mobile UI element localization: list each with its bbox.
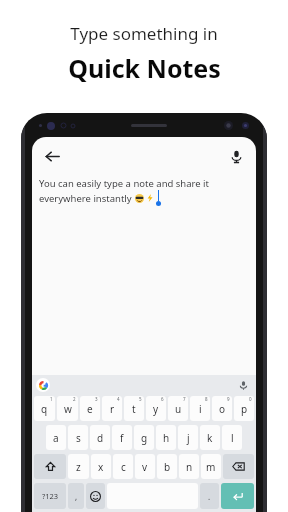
staticText: c bbox=[121, 460, 126, 474]
staticText: l bbox=[231, 431, 234, 445]
staticText: r bbox=[110, 402, 115, 416]
button[interactable]: i bbox=[190, 396, 210, 421]
button[interactable]: m bbox=[201, 454, 221, 479]
staticText: 3 bbox=[95, 396, 98, 402]
button[interactable]: x bbox=[91, 454, 111, 479]
staticText: k bbox=[207, 431, 213, 445]
staticText: u bbox=[175, 402, 182, 416]
staticText: p bbox=[241, 402, 248, 416]
button[interactable]: Voice input bbox=[222, 142, 250, 170]
button[interactable]: Back bbox=[37, 141, 67, 171]
button[interactable]: s bbox=[68, 425, 88, 450]
staticText: d bbox=[97, 431, 104, 445]
button[interactable]: y bbox=[146, 396, 166, 421]
button[interactable]: Shift bbox=[34, 454, 66, 479]
staticText: 5 bbox=[139, 396, 142, 402]
button[interactable]: ?123 bbox=[34, 483, 66, 509]
staticText: ?123 bbox=[42, 491, 59, 501]
button[interactable]: c bbox=[113, 454, 133, 479]
button[interactable]: , bbox=[68, 483, 84, 509]
staticText: v bbox=[142, 460, 148, 474]
staticText: i bbox=[199, 402, 202, 416]
button[interactable]: l bbox=[222, 425, 242, 450]
staticText: 0 bbox=[249, 396, 252, 402]
staticText: 9 bbox=[227, 396, 230, 402]
button[interactable]: f bbox=[112, 425, 132, 450]
button[interactable]: o bbox=[212, 396, 232, 421]
button[interactable]: p bbox=[234, 396, 254, 421]
staticText: everywhere instantly bbox=[39, 192, 135, 205]
staticText: s bbox=[76, 431, 81, 445]
staticText: o bbox=[219, 402, 226, 416]
staticText: 8 bbox=[205, 396, 208, 402]
button[interactable]: n bbox=[179, 454, 199, 479]
button[interactable]: j bbox=[178, 425, 198, 450]
staticText: j bbox=[187, 431, 190, 445]
button[interactable]: u bbox=[168, 396, 188, 421]
button[interactable]: r bbox=[102, 396, 122, 421]
staticText: 7 bbox=[183, 396, 186, 402]
staticText: 2 bbox=[73, 396, 76, 402]
staticText: x bbox=[98, 460, 104, 474]
staticText: b bbox=[164, 460, 171, 474]
staticText: 6 bbox=[161, 396, 164, 402]
staticText: 4 bbox=[117, 396, 120, 402]
button[interactable]: d bbox=[90, 425, 110, 450]
button[interactable]: z bbox=[68, 454, 89, 479]
button[interactable]: Backspace bbox=[223, 454, 254, 479]
button[interactable]: h bbox=[156, 425, 176, 450]
staticText: t bbox=[132, 402, 136, 416]
staticText: w bbox=[64, 402, 72, 416]
staticText: Type something in bbox=[70, 22, 218, 45]
staticText: n bbox=[186, 460, 193, 474]
button[interactable]: Google bbox=[36, 378, 50, 392]
button[interactable]: Enter bbox=[221, 483, 254, 509]
staticText: f bbox=[120, 431, 124, 445]
staticText: e bbox=[87, 402, 93, 416]
staticText: Quick Notes bbox=[68, 51, 221, 85]
staticText: y bbox=[153, 402, 159, 416]
staticText: h bbox=[163, 431, 170, 445]
button[interactable]: e bbox=[80, 396, 100, 421]
button[interactable]: Voice typing bbox=[236, 378, 250, 392]
button[interactable]: Emoji bbox=[86, 483, 105, 509]
staticText: m bbox=[206, 460, 216, 474]
staticText: . bbox=[208, 491, 211, 502]
button[interactable]: a bbox=[46, 425, 66, 450]
button[interactable]: q bbox=[34, 396, 55, 421]
staticText: g bbox=[141, 431, 148, 445]
button[interactable]: b bbox=[157, 454, 177, 479]
staticText: 1 bbox=[50, 396, 53, 402]
button[interactable]: t bbox=[124, 396, 144, 421]
button[interactable]: g bbox=[134, 425, 154, 450]
button[interactable]: . bbox=[200, 483, 219, 509]
staticText: , bbox=[75, 491, 78, 502]
staticText: z bbox=[76, 460, 81, 474]
staticText: a bbox=[53, 431, 59, 445]
button[interactable]: v bbox=[135, 454, 155, 479]
button[interactable]: w bbox=[57, 396, 78, 421]
staticText: You can easily type a note and share it bbox=[39, 177, 210, 190]
button[interactable]: k bbox=[200, 425, 220, 450]
staticText: q bbox=[41, 402, 48, 416]
